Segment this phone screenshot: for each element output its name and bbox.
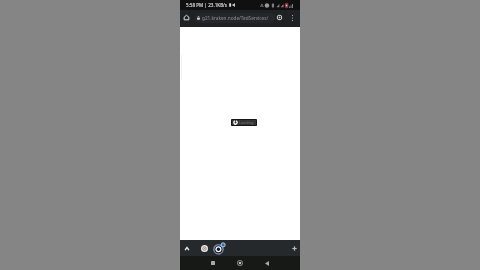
button[interactable]: More options	[288, 13, 297, 22]
staticText: Loading...	[239, 120, 255, 125]
button[interactable]: Loading...	[232, 120, 256, 125]
button[interactable]: Incognito	[199, 243, 210, 254]
button[interactable]: Home	[233, 256, 247, 270]
button[interactable]: New tab	[289, 243, 299, 253]
button[interactable]: Recent apps	[206, 256, 220, 270]
button[interactable]: Browser home	[213, 242, 226, 255]
staticText: g21.kraken.node/TedServices/Qodev	[202, 15, 274, 21]
button[interactable]: Home	[182, 13, 191, 22]
button[interactable]: Tabs	[274, 12, 285, 23]
staticText: 5:58 PM | 23.1KB/s	[186, 2, 228, 8]
button[interactable]: Back	[260, 256, 274, 270]
button[interactable]: Expand toolbar	[182, 243, 192, 253]
